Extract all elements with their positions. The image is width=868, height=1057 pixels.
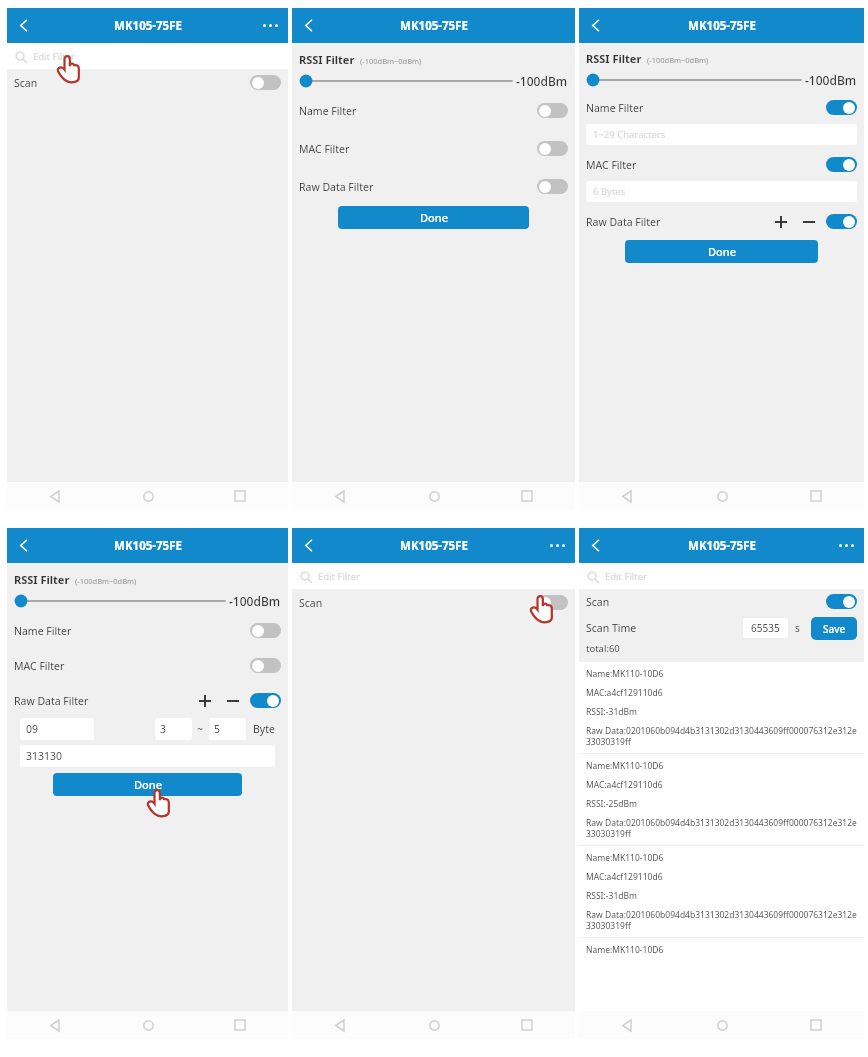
- staticText: 1~29 Characters: [593, 128, 666, 141]
- button[interactable]: Back: [41, 482, 69, 510]
- staticText: 3: [160, 722, 167, 736]
- button[interactable]: Home: [708, 1011, 736, 1039]
- staticText: ~: [197, 722, 204, 736]
- button[interactable]: Off: [537, 595, 568, 610]
- staticText: MK105-75FE: [688, 18, 756, 34]
- staticText: 6 Bytes: [593, 185, 626, 198]
- button[interactable]: Add: [771, 212, 790, 231]
- staticText: Done: [134, 777, 162, 792]
- button[interactable]: Name:MK110-10D6: [579, 662, 864, 753]
- button[interactable]: More options: [539, 528, 575, 563]
- button[interactable]: 6 Bytes: [586, 181, 857, 202]
- button[interactable]: Back: [579, 528, 611, 563]
- button[interactable]: On: [250, 693, 281, 708]
- button[interactable]: Done: [625, 240, 818, 263]
- staticText: (-100dBm~0dBm): [647, 55, 709, 65]
- button[interactable]: More options: [252, 8, 288, 43]
- staticText: MK105-75FE: [400, 538, 468, 554]
- button[interactable]: Raw Data Filter: [586, 208, 857, 235]
- button[interactable]: Home: [420, 482, 448, 510]
- button[interactable]: Name:MK110-10D6: [579, 846, 864, 937]
- staticText: Scan: [14, 76, 38, 90]
- staticText: MAC:a4cf129110d6: [586, 687, 663, 699]
- button[interactable]: On: [826, 157, 857, 172]
- button[interactable]: Home: [134, 1011, 162, 1039]
- button[interactable]: Back: [613, 482, 641, 510]
- button[interactable]: Name:MK110-10D6: [579, 754, 864, 845]
- button[interactable]: Scan: [299, 589, 568, 616]
- button[interactable]: 65535: [743, 618, 788, 638]
- button[interactable]: Remove: [223, 691, 242, 710]
- staticText: MAC Filter: [14, 659, 65, 673]
- button[interactable]: Off: [250, 75, 281, 90]
- button[interactable]: Recents: [802, 482, 830, 510]
- button[interactable]: Recents: [226, 1011, 254, 1039]
- button[interactable]: Back: [292, 528, 324, 563]
- button[interactable]: Off: [537, 103, 568, 118]
- staticText: Done: [708, 244, 736, 259]
- button[interactable]: Back: [7, 8, 39, 43]
- button[interactable]: Home: [134, 482, 162, 510]
- button[interactable]: More options: [828, 528, 864, 563]
- staticText: Raw Data:0201060b094d4b3131302d313044360…: [586, 909, 858, 931]
- button[interactable]: Edit Filter: [7, 43, 288, 69]
- staticText: Name:MK110-10D6: [586, 944, 664, 956]
- button[interactable]: 09: [20, 718, 94, 740]
- staticText: Name:MK110-10D6: [586, 668, 664, 680]
- button[interactable]: Scan: [586, 589, 857, 614]
- button[interactable]: Name Filter: [586, 94, 857, 121]
- button[interactable]: MAC Filter: [299, 135, 568, 162]
- button[interactable]: Recents: [513, 1011, 541, 1039]
- staticText: MK105-75FE: [114, 538, 182, 554]
- staticText: Scan: [299, 596, 323, 610]
- button[interactable]: Name Filter: [299, 97, 568, 124]
- button[interactable]: Home: [708, 482, 736, 510]
- button[interactable]: 1~29 Characters: [586, 124, 857, 145]
- button[interactable]: Name Filter: [14, 617, 281, 644]
- staticText: Done: [420, 210, 448, 225]
- button[interactable]: On: [826, 100, 857, 115]
- button[interactable]: Off: [250, 658, 281, 673]
- button[interactable]: Back: [326, 482, 354, 510]
- staticText: -100dBm: [805, 72, 857, 88]
- button[interactable]: Off: [537, 141, 568, 156]
- button[interactable]: Back: [326, 1011, 354, 1039]
- button[interactable]: Edit Filter: [579, 563, 864, 589]
- button[interactable]: Back: [7, 528, 39, 563]
- staticText: Name:MK110-10D6: [586, 852, 664, 864]
- button[interactable]: Done: [338, 206, 529, 229]
- staticText: Edit Filter: [605, 570, 648, 583]
- staticText: RSSI:-25dBm: [586, 798, 637, 810]
- staticText: Name Filter: [299, 104, 357, 118]
- button[interactable]: Back: [41, 1011, 69, 1039]
- button[interactable]: MAC Filter: [14, 652, 281, 679]
- staticText: RSSI:-31dBm: [586, 890, 637, 902]
- staticText: (-100dBm~0dBm): [75, 576, 137, 586]
- button[interactable]: Remove: [799, 212, 818, 231]
- button[interactable]: 5: [209, 718, 246, 740]
- button[interactable]: Edit Filter: [292, 563, 575, 589]
- button[interactable]: Raw Data Filter: [299, 173, 568, 200]
- button[interactable]: MAC Filter: [586, 151, 857, 178]
- button[interactable]: Scan: [14, 69, 281, 96]
- button[interactable]: Recents: [513, 482, 541, 510]
- button[interactable]: Back: [579, 8, 611, 43]
- staticText: RSSI Filter: [14, 572, 70, 587]
- button[interactable]: On: [826, 214, 857, 229]
- button[interactable]: Recents: [802, 1011, 830, 1039]
- button[interactable]: Save: [811, 617, 857, 640]
- button[interactable]: Off: [250, 623, 281, 638]
- staticText: 313130: [26, 749, 63, 763]
- button[interactable]: Back: [613, 1011, 641, 1039]
- button[interactable]: Done: [53, 773, 242, 796]
- button[interactable]: 3: [155, 718, 192, 740]
- button[interactable]: Add: [195, 691, 214, 710]
- button[interactable]: Off: [537, 179, 568, 194]
- staticText: MK105-75FE: [688, 538, 756, 554]
- button[interactable]: Back: [292, 8, 324, 43]
- button[interactable]: 313130: [20, 745, 275, 767]
- button[interactable]: Recents: [226, 482, 254, 510]
- button[interactable]: Raw Data Filter: [14, 687, 281, 714]
- button[interactable]: On: [826, 594, 857, 609]
- button[interactable]: Home: [420, 1011, 448, 1039]
